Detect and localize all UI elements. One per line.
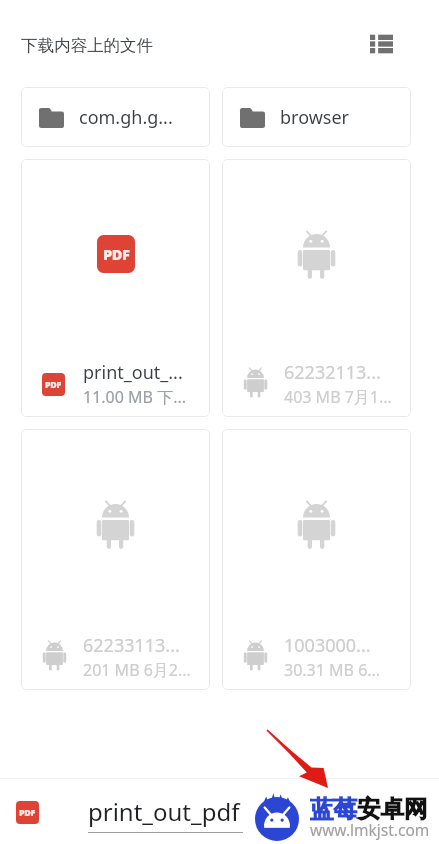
staticText: 201 MB 6月2... [83,659,191,681]
staticText: 30.31 MB 6... [284,659,381,681]
button[interactable]: 62233113... [21,429,210,690]
staticText: PDF [45,379,62,391]
button[interactable]: List view [364,27,398,61]
button[interactable]: 62232113... [222,159,411,417]
staticText: com.gh.g... [79,105,173,130]
staticText: 安卓网 [357,794,428,824]
staticText: 403 MB 7月1... [284,386,392,408]
staticText: PDF [103,244,130,264]
staticText: 蓝莓 [310,794,357,824]
staticText: www.lmkjst.com [310,819,430,840]
button[interactable]: browser [222,87,411,147]
button[interactable]: com.gh.g... [21,87,210,147]
staticText: 62233113... [83,633,180,658]
staticText: 下载内容上的文件 [21,35,153,56]
button[interactable]: 1003000... [222,429,411,690]
button[interactable]: PDF [0,779,439,844]
staticText: 1003000... [284,633,371,658]
button[interactable]: PDF [21,159,210,417]
staticText: print_out_pdf [88,795,240,828]
staticText: print_out_... [83,360,183,385]
staticText: 11.00 MB 下... [83,386,186,408]
staticText: PDF [19,807,36,819]
staticText: 62232113... [284,360,381,385]
staticText: browser [280,105,350,130]
